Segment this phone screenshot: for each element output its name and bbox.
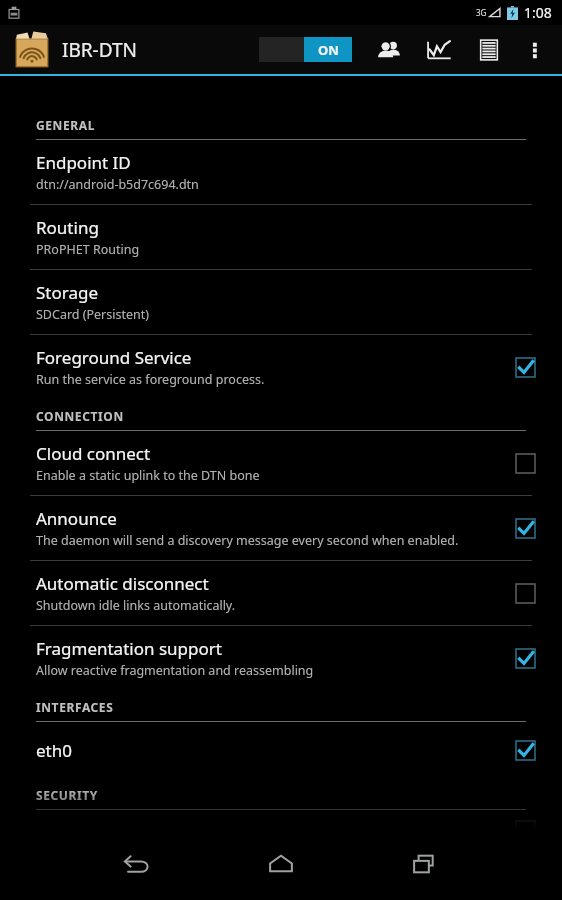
staticText: INTERFACES [36, 699, 114, 715]
staticText: GENERAL [36, 117, 95, 133]
staticText: PRoPHET Routing [36, 241, 140, 258]
staticText: Routing [36, 216, 99, 239]
button[interactable]: Log [472, 28, 506, 72]
staticText: Announce [36, 507, 117, 530]
staticText: eth0 [36, 739, 72, 762]
button[interactable]: Endpoint ID [0, 140, 562, 204]
button[interactable]: ON [257, 37, 354, 62]
staticText: Run the service as foreground process. [36, 371, 265, 388]
button[interactable]: Foreground Service [0, 335, 562, 399]
button[interactable]: Automatic disconnect [0, 561, 562, 625]
button[interactable]: Announce [508, 511, 542, 545]
button[interactable]: Fragmentation support [508, 641, 542, 675]
button[interactable]: Announce [0, 496, 562, 560]
staticText: Storage [36, 281, 99, 304]
staticText: Shutdown idle links automatically. [36, 597, 236, 614]
button[interactable]: Cloud connect [0, 431, 562, 495]
staticText: Fragmentation support [36, 637, 222, 660]
button[interactable]: Routing [0, 205, 562, 269]
staticText: Endpoint ID [36, 151, 131, 174]
button[interactable]: Cloud connect [508, 446, 542, 480]
staticText: SECURITY [36, 787, 98, 803]
staticText: 3G [476, 7, 487, 18]
button[interactable]: Fragmentation support [0, 626, 562, 690]
button[interactable]: Back [109, 836, 165, 892]
button[interactable]: Home [253, 836, 309, 892]
staticText: Foreground Service [36, 346, 192, 369]
button[interactable]: Automatic disconnect [508, 576, 542, 610]
staticText: SDCard (Persistent) [36, 306, 150, 323]
staticText: CONNECTION [36, 408, 124, 424]
button[interactable]: More options [518, 28, 552, 72]
button[interactable]: Contacts [372, 28, 406, 72]
staticText: Cloud connect [36, 442, 151, 465]
staticText: IBR-DTN [62, 37, 138, 63]
button[interactable]: Recent apps [397, 836, 453, 892]
staticText: The daemon will send a discovery message… [36, 532, 459, 549]
staticText: Enable a static uplink to the DTN bone [36, 467, 260, 484]
staticText: ON [318, 41, 339, 59]
button[interactable]: Foreground Service [508, 350, 542, 384]
staticText: Automatic disconnect [36, 572, 209, 595]
button[interactable]: Statistics [422, 28, 456, 72]
button[interactable]: eth0 [0, 722, 562, 778]
staticText: dtn://android-b5d7c694.dtn [36, 176, 199, 193]
button[interactable]: Storage [0, 270, 562, 334]
button[interactable]: eth0 [508, 733, 542, 767]
staticText: Allow reactive fragmentation and reassem… [36, 662, 314, 679]
staticText: 1:08 [524, 3, 552, 22]
